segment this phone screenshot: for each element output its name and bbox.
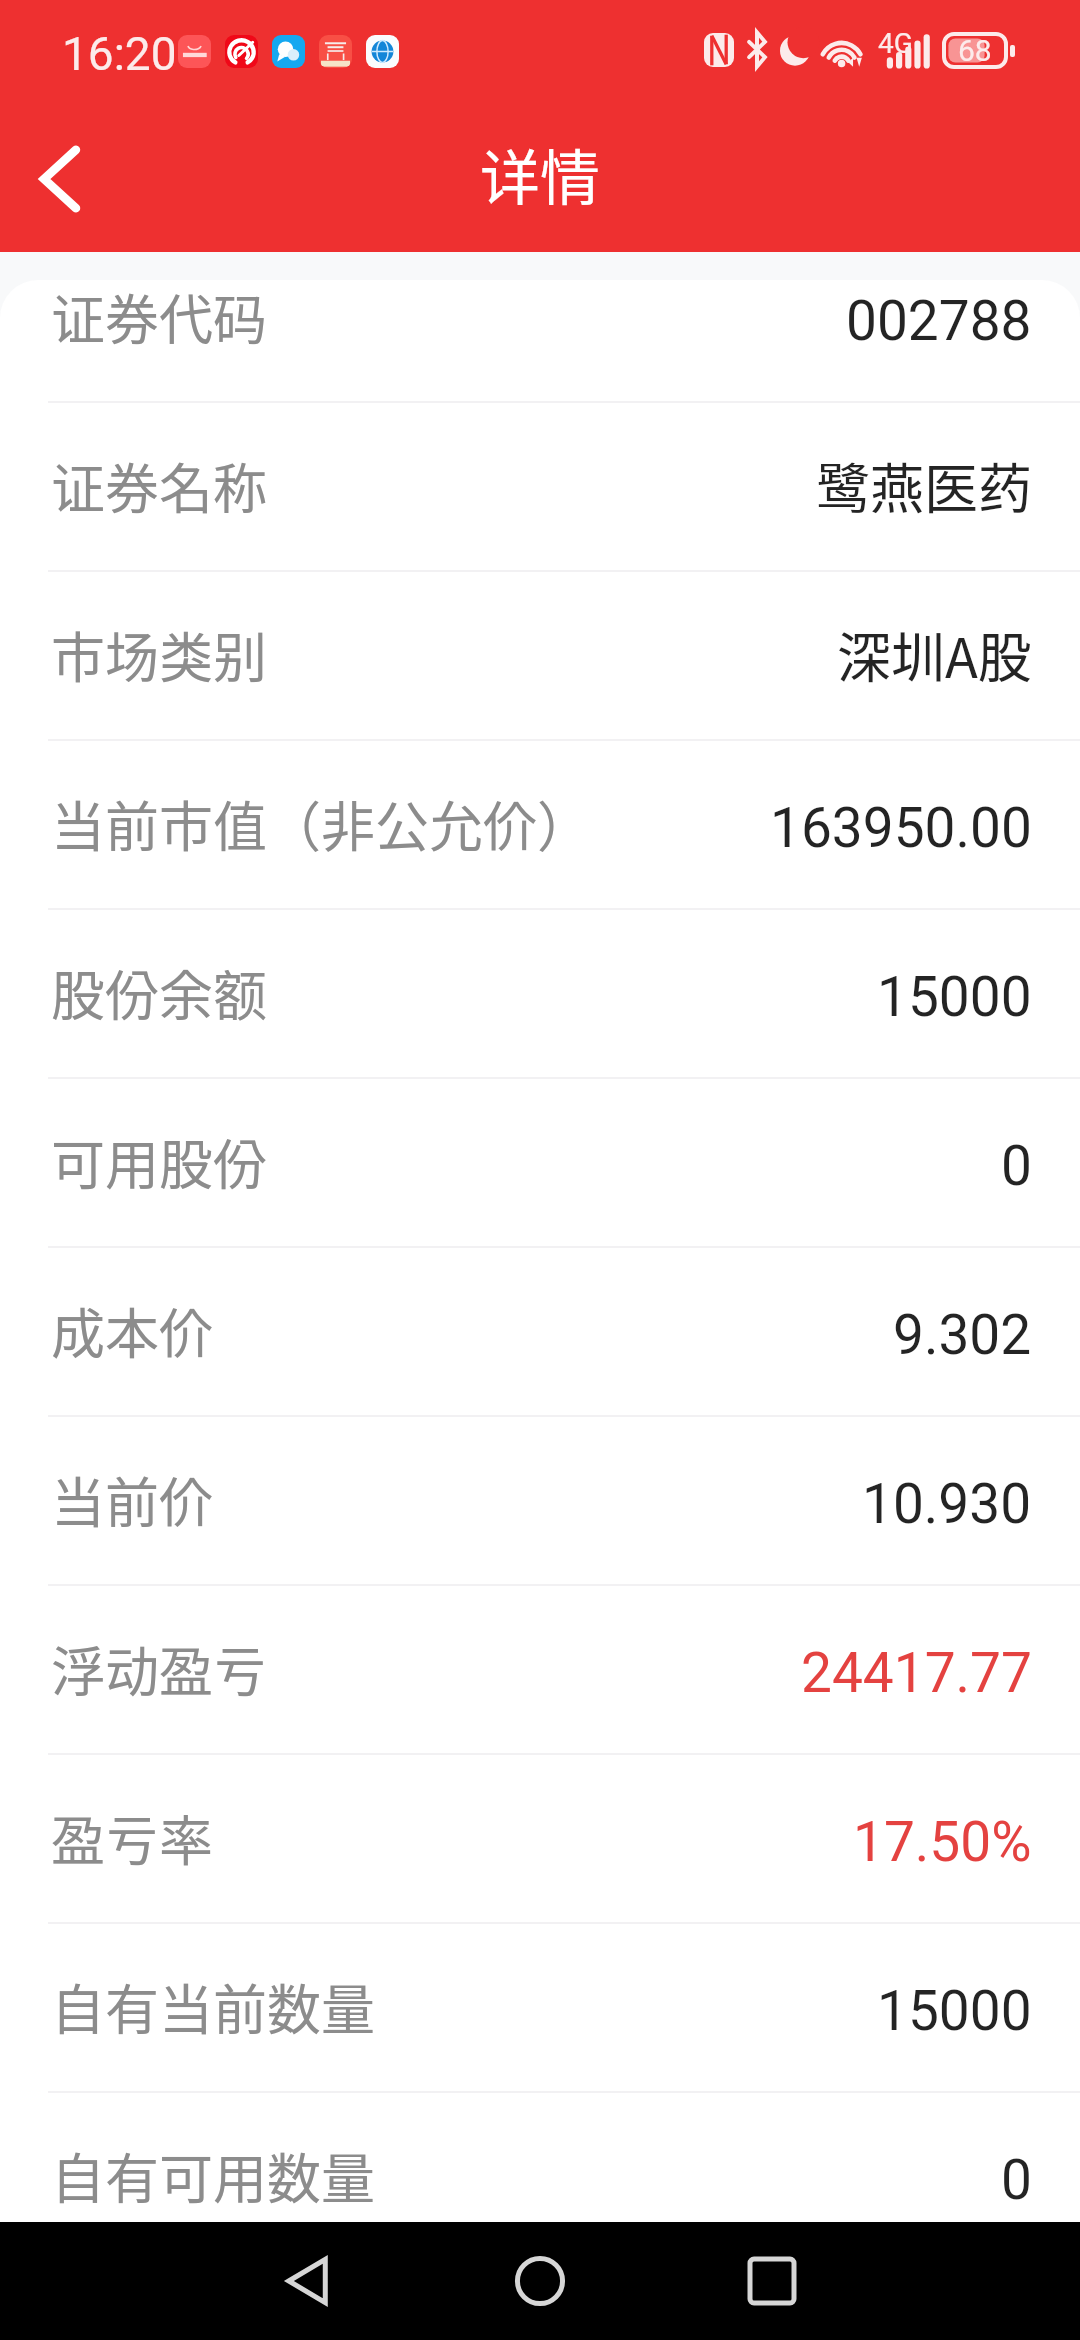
staticText: 成本价 bbox=[51, 1291, 213, 1369]
button[interactable]: Back bbox=[0, 104, 120, 244]
staticText: 16:20 bbox=[62, 27, 177, 81]
staticText: 0 bbox=[1001, 2148, 1032, 2212]
staticText: 4G bbox=[878, 27, 913, 60]
staticText: 9.302 bbox=[893, 1303, 1032, 1367]
staticText: 24417.77 bbox=[801, 1641, 1032, 1705]
button[interactable]: Back bbox=[260, 2233, 356, 2329]
button[interactable]: 成本价 bbox=[0, 1248, 1080, 1417]
staticText: 可用股份 bbox=[51, 1122, 267, 1200]
staticText: 15000 bbox=[877, 1979, 1032, 2043]
button[interactable]: 自有可用数量 bbox=[0, 2093, 1080, 2222]
staticText: 证券名称 bbox=[51, 446, 267, 524]
button[interactable]: 股份余额 bbox=[0, 910, 1080, 1079]
staticText: 深圳A股 bbox=[837, 615, 1032, 693]
button[interactable]: 市场类别 bbox=[0, 572, 1080, 741]
staticText: 当前价 bbox=[51, 1460, 213, 1538]
staticText: 15000 bbox=[877, 965, 1032, 1029]
button[interactable]: 当前市值（非公允价） bbox=[0, 741, 1080, 910]
staticText: 浮动盈亏 bbox=[51, 1629, 267, 1707]
staticText: 163950.00 bbox=[770, 796, 1032, 860]
button[interactable]: 浮动盈亏 bbox=[0, 1586, 1080, 1755]
staticText: 详情 bbox=[480, 130, 600, 217]
button[interactable]: 可用股份 bbox=[0, 1079, 1080, 1248]
button[interactable]: 盈亏率 bbox=[0, 1755, 1080, 1924]
button[interactable]: 证券代码 bbox=[0, 280, 1080, 403]
staticText: 0 bbox=[1001, 1134, 1032, 1198]
staticText: 市场类别 bbox=[51, 615, 267, 693]
staticText: 鹭燕医药 bbox=[816, 446, 1032, 524]
staticText: 证券代码 bbox=[51, 280, 267, 355]
staticText: 68 bbox=[958, 33, 992, 68]
staticText: 17.50% bbox=[853, 1810, 1032, 1874]
staticText: 当前市值（非公允价） bbox=[51, 784, 591, 862]
staticText: 002788 bbox=[846, 289, 1032, 353]
staticText: 自有可用数量 bbox=[51, 2136, 375, 2214]
staticText: 自有当前数量 bbox=[51, 1967, 375, 2045]
button[interactable]: 当前价 bbox=[0, 1417, 1080, 1586]
button[interactable]: Recents bbox=[724, 2233, 820, 2329]
button[interactable]: 自有当前数量 bbox=[0, 1924, 1080, 2093]
button[interactable]: Home bbox=[492, 2233, 588, 2329]
button[interactable]: 证券名称 bbox=[0, 403, 1080, 572]
staticText: 股份余额 bbox=[51, 953, 267, 1031]
staticText: 盈亏率 bbox=[51, 1798, 213, 1876]
staticText: 10.930 bbox=[862, 1472, 1032, 1536]
